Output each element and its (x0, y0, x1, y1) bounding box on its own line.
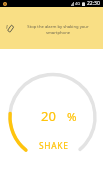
staticText: 4G (75, 1, 81, 6)
staticText: 20 (41, 107, 56, 125)
staticText: Stop the alarm by shaking your smartphon… (27, 24, 89, 36)
staticText: SHAKE (39, 140, 69, 151)
staticText: 22:30 (87, 0, 100, 7)
button[interactable]: Shake phone to stop alarm (3, 21, 17, 35)
staticText: % (67, 109, 77, 125)
